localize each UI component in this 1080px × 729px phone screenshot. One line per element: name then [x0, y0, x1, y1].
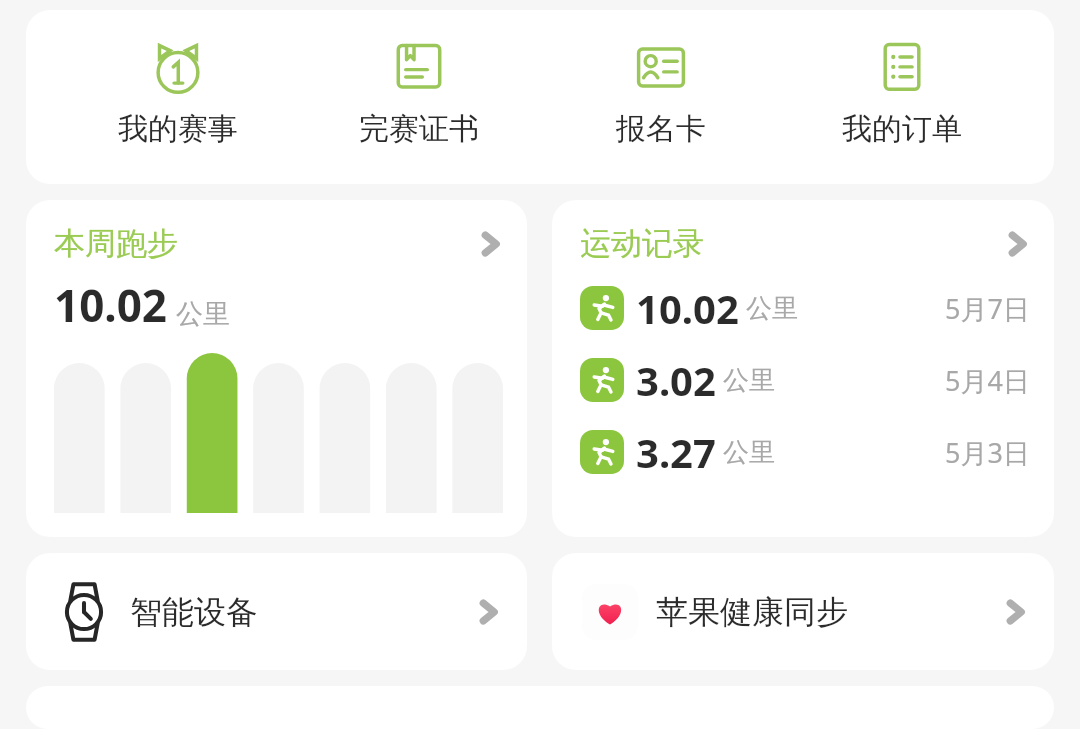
- other: 查看更多: [1002, 599, 1028, 625]
- other: 苹果健康同步: [596, 598, 624, 626]
- staticText: 5月4日: [945, 362, 1030, 399]
- staticText: 3.27: [636, 425, 716, 479]
- other: 查看更多: [475, 599, 501, 625]
- other: 我的赛事: [150, 40, 206, 96]
- button[interactable]: 我的赛事: [88, 38, 268, 148]
- staticText: 10.02: [54, 275, 168, 335]
- staticText: 公里: [723, 436, 775, 469]
- other: 智能设备: [56, 584, 112, 640]
- other: 查看更多: [1004, 231, 1030, 257]
- staticText: 3.02: [636, 353, 716, 407]
- staticText: 公里: [176, 297, 230, 331]
- other: 完赛证书: [391, 40, 447, 96]
- other: 我的订单: [874, 40, 930, 96]
- staticText: 报名卡: [616, 110, 706, 148]
- staticText: 苹果健康同步: [656, 592, 848, 632]
- staticText: 公里: [746, 292, 798, 325]
- staticText: 我的订单: [842, 110, 962, 148]
- other: 报名卡: [633, 40, 689, 96]
- staticText: 运动记录: [580, 224, 704, 263]
- button[interactable]: 报名卡: [571, 38, 751, 148]
- button[interactable]: 我的订单: [812, 38, 992, 148]
- button[interactable]: 完赛证书: [329, 38, 509, 148]
- other: 查看更多: [477, 231, 503, 257]
- button[interactable]: 本周跑步: [26, 200, 527, 537]
- staticText: 本周跑步: [54, 224, 178, 263]
- button[interactable]: 运动记录: [552, 200, 1054, 537]
- staticText: 智能设备: [130, 592, 258, 632]
- staticText: 公里: [723, 364, 775, 397]
- button[interactable]: 智能设备: [26, 553, 527, 670]
- staticText: 5月3日: [945, 434, 1030, 471]
- staticText: 10.02: [636, 281, 739, 335]
- staticText: 5月7日: [945, 290, 1030, 327]
- button[interactable]: 苹果健康同步: [552, 553, 1054, 670]
- staticText: 完赛证书: [359, 110, 479, 148]
- staticText: 我的赛事: [118, 110, 238, 148]
